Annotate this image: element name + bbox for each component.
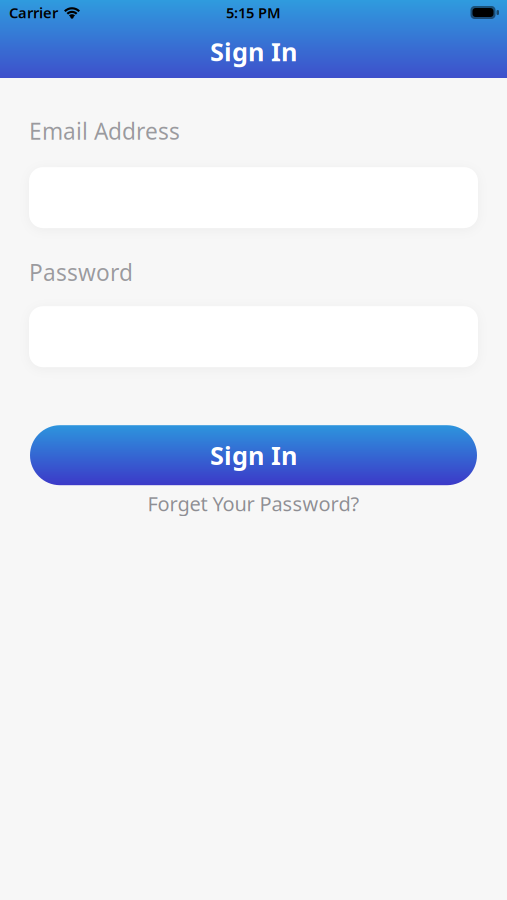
- staticText: Forget Your Password?: [147, 490, 359, 517]
- staticText: Password: [29, 257, 133, 287]
- staticText: Carrier: [9, 3, 58, 22]
- staticText: Email Address: [29, 116, 180, 146]
- button[interactable]: Sign In: [29, 425, 478, 485]
- button[interactable]: Forget Your Password?: [29, 490, 478, 517]
- staticText: Sign In: [210, 438, 297, 472]
- staticText: Sign In: [210, 35, 297, 68]
- staticText: 5:15 PM: [226, 3, 281, 22]
